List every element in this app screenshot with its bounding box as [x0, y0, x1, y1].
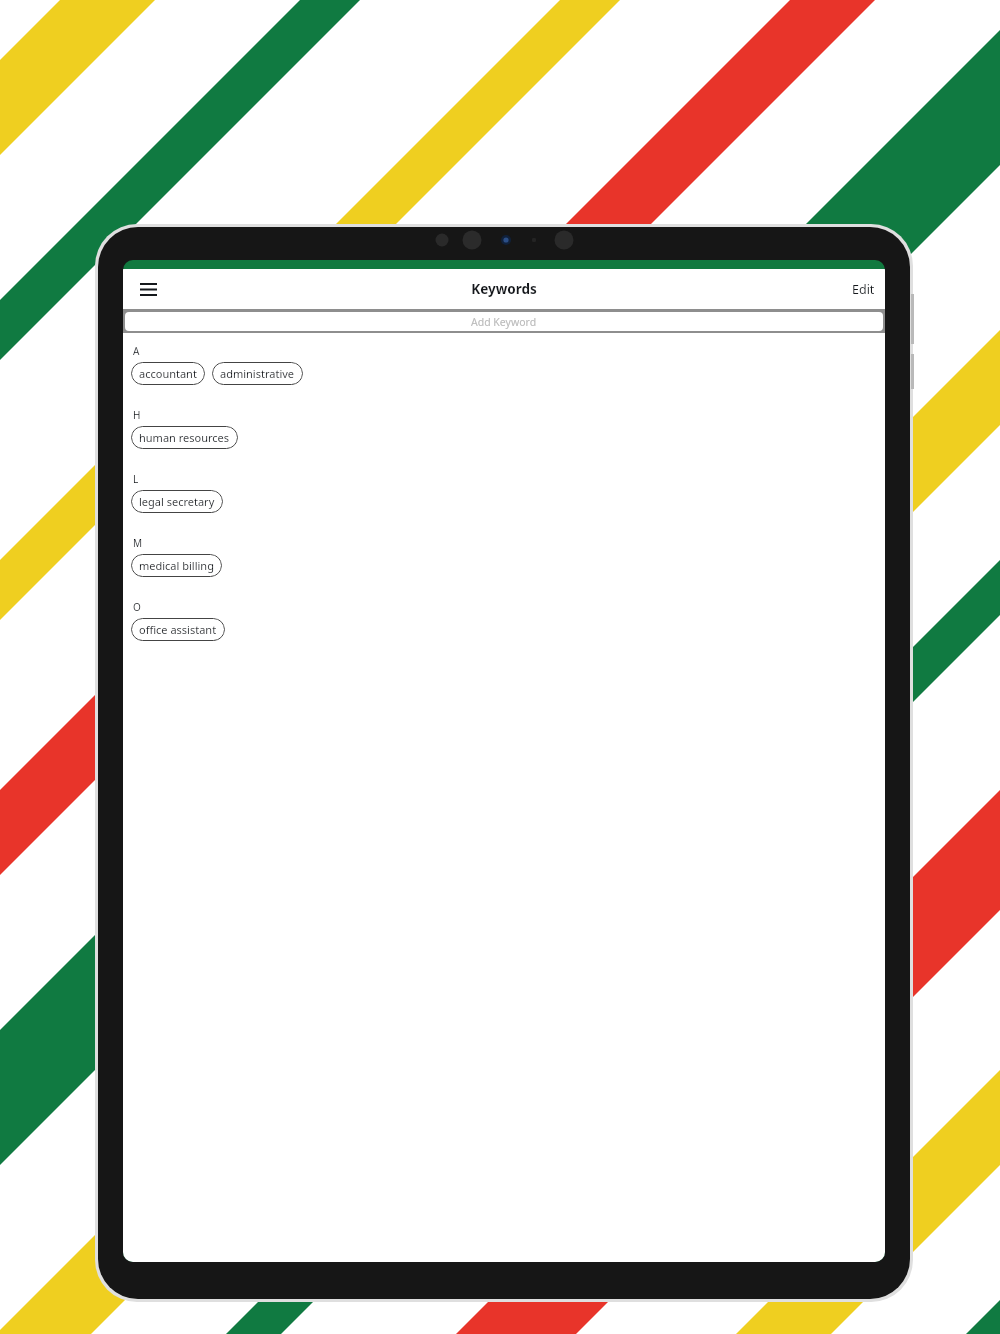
staticText: Edit [852, 281, 875, 298]
staticText: accountant [139, 366, 197, 381]
button[interactable]: accountant [131, 362, 205, 385]
staticText: O [133, 600, 141, 614]
staticText: Keywords [471, 280, 537, 298]
staticText: legal secretary [139, 494, 215, 509]
button[interactable]: legal secretary [131, 490, 223, 513]
staticText: medical billing [139, 558, 214, 573]
staticText: L [133, 472, 139, 486]
button[interactable]: Add Keyword [125, 312, 883, 331]
staticText: administrative [220, 366, 295, 381]
button[interactable]: Edit [842, 275, 885, 304]
staticText: M [133, 536, 143, 550]
staticText: H [133, 408, 141, 422]
staticText: human resources [139, 430, 230, 445]
button[interactable]: medical billing [131, 554, 222, 577]
button[interactable]: office assistant [131, 618, 225, 641]
button[interactable]: Menu [133, 274, 163, 304]
staticText: office assistant [139, 622, 217, 637]
staticText: A [133, 344, 140, 358]
button[interactable]: administrative [212, 362, 303, 385]
button[interactable]: human resources [131, 426, 238, 449]
staticText: Add Keyword [471, 315, 537, 329]
